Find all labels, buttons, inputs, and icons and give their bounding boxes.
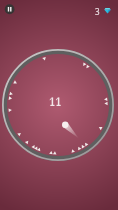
button[interactable]: Pause bbox=[2, 1, 19, 18]
button[interactable]: Gems: 3 bbox=[94, 2, 116, 18]
staticText: 3 bbox=[95, 6, 100, 17]
